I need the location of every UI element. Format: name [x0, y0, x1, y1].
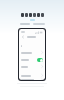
- button[interactable]: Toggle: [19, 56, 45, 63]
- button[interactable]: [19, 42, 45, 49]
- button[interactable]: Toggle: [37, 58, 43, 62]
- button[interactable]: Back: [21, 35, 25, 39]
- button[interactable]: [19, 79, 45, 80]
- button[interactable]: [19, 49, 45, 56]
- button[interactable]: [19, 63, 45, 70]
- button[interactable]: [19, 72, 45, 79]
